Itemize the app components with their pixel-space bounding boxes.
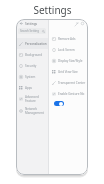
staticText: Remove Ads <box>58 37 76 41</box>
button[interactable]: Remove Ads <box>52 33 88 44</box>
staticText: Apps <box>25 86 33 90</box>
button[interactable]: Display Size/Style <box>52 55 88 66</box>
button[interactable]: Enable Gesture No Icon <box>52 88 88 99</box>
button[interactable]: Apps <box>16 82 48 93</box>
staticText: Advanced Feature <box>25 95 39 103</box>
staticText: Display Size/Style <box>58 59 83 63</box>
button[interactable]: Personalization <box>16 38 48 49</box>
button[interactable]: Security <box>16 60 48 71</box>
button[interactable]: System <box>16 71 48 82</box>
button[interactable]: Background <box>16 49 48 60</box>
staticText: Lock Screen <box>58 48 75 52</box>
staticText: Personalization <box>25 42 47 46</box>
staticText: Network Management <box>25 107 44 115</box>
staticText: Search Setting <box>20 29 39 33</box>
staticText: System <box>25 75 36 79</box>
button[interactable]: Network Management <box>16 105 48 117</box>
button[interactable]: Help <box>80 21 85 26</box>
button[interactable]: Back <box>19 21 24 26</box>
button[interactable]: Search Setting <box>18 28 46 34</box>
staticText: Security <box>25 64 37 68</box>
staticText: Grid View Size <box>58 70 78 74</box>
button[interactable]: Advanced Feature <box>16 93 48 105</box>
staticText: Background <box>25 53 43 57</box>
staticText: Settings <box>33 3 72 17</box>
staticText: Enable Gesture No Icon <box>58 92 88 96</box>
button[interactable]: Lock Screen <box>52 44 88 55</box>
button[interactable]: Transparent Center <box>52 77 88 88</box>
button[interactable]: Reset <box>74 22 78 26</box>
staticText: Settings <box>25 22 38 26</box>
button[interactable]: Toggle on <box>54 101 64 106</box>
button[interactable]: Grid View Size <box>52 66 88 77</box>
staticText: Transparent Center <box>58 81 86 85</box>
